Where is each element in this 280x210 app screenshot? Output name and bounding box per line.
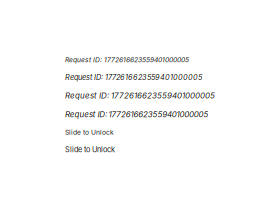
staticText: Request ID: 1772616623559401000005 — [65, 73, 202, 82]
staticText: Request ID: 1772616623559401000005 — [65, 91, 215, 100]
staticText: Slide to Unlock — [65, 128, 114, 136]
staticText: Slide to Unlock — [65, 145, 115, 154]
staticText: Request ID: 1772616623559401000005 — [65, 56, 189, 64]
staticText: Request ID: 1772616623559401000005 — [65, 109, 208, 119]
